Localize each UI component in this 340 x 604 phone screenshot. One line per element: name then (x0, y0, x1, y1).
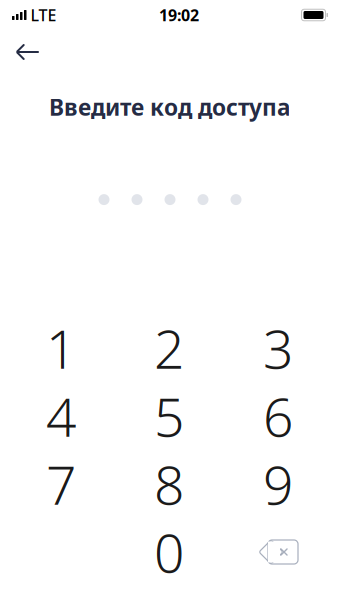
staticText: 3 (263, 313, 293, 383)
staticText: LTE (30, 4, 56, 26)
button[interactable]: 5 (122, 382, 216, 450)
staticText: 9 (263, 449, 293, 519)
staticText: 7 (46, 449, 76, 519)
staticText: 2 (154, 313, 184, 383)
staticText: 6 (263, 381, 293, 451)
staticText: Введите код доступа (49, 92, 291, 122)
button[interactable]: 3 (216, 314, 340, 382)
button[interactable]: 9 (216, 450, 340, 518)
button[interactable]: Назад (6, 30, 50, 74)
button[interactable]: 8 (122, 450, 216, 518)
staticText: 4 (46, 381, 76, 451)
button[interactable]: 2 (122, 314, 216, 382)
staticText: 8 (154, 449, 184, 519)
button[interactable]: 7 (0, 450, 122, 518)
button[interactable]: 1 (0, 314, 122, 382)
button[interactable]: 4 (0, 382, 122, 450)
staticText: 0 (154, 517, 184, 587)
staticText: 5 (154, 381, 184, 451)
button[interactable]: 0 (122, 518, 216, 586)
button[interactable]: Удалить (216, 518, 340, 586)
button[interactable]: 6 (216, 382, 340, 450)
staticText: 1 (46, 313, 76, 383)
staticText: 19:02 (159, 4, 199, 26)
